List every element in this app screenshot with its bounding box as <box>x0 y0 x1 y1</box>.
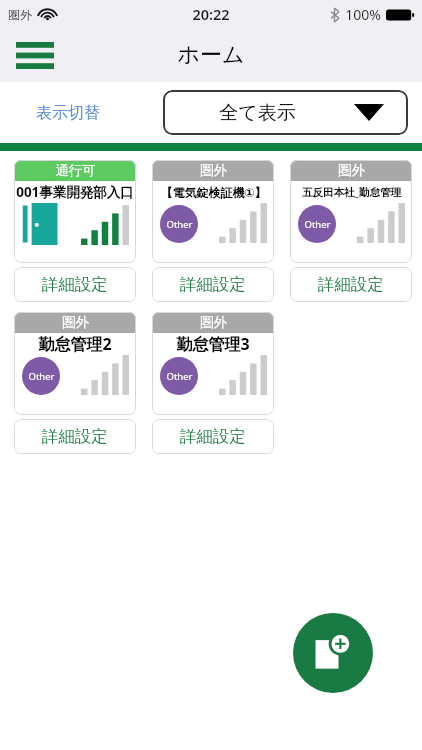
button[interactable]: 詳細設定 <box>14 267 136 302</box>
staticText: 勤怠管理2 <box>38 333 112 355</box>
staticText: 詳細設定 <box>180 274 246 295</box>
button[interactable]: 詳細設定 <box>152 267 274 302</box>
button[interactable]: 詳細設定 <box>14 419 136 454</box>
button[interactable]: 全て表示 <box>163 90 408 135</box>
staticText: 100% <box>345 5 381 24</box>
button[interactable]: 圏外 <box>290 160 412 263</box>
staticText: 詳細設定 <box>42 274 108 295</box>
staticText: 詳細設定 <box>318 274 384 295</box>
staticText: 圏外 <box>8 7 32 22</box>
staticText: 通行可 <box>55 162 96 179</box>
staticText: Other <box>166 370 193 383</box>
button[interactable]: 圏外 <box>14 312 136 415</box>
staticText: 詳細設定 <box>180 426 246 447</box>
staticText: 五反田本社_勤怠管理 <box>302 185 401 199</box>
staticText: 【電気錠検証機①】 <box>160 185 267 200</box>
button[interactable]: 通行可 <box>14 160 136 263</box>
button[interactable]: Add door <box>293 613 373 693</box>
button[interactable]: 詳細設定 <box>152 419 274 454</box>
staticText: 詳細設定 <box>42 426 108 447</box>
staticText: 勤怠管理3 <box>176 333 250 355</box>
button[interactable]: 圏外 <box>152 312 274 415</box>
staticText: 表示切替 <box>36 103 100 123</box>
staticText: Other <box>166 218 193 231</box>
button[interactable]: Menu <box>12 36 58 74</box>
staticText: 001事業開発部入口 <box>16 183 134 201</box>
staticText: Other <box>28 370 55 383</box>
staticText: 全て表示 <box>219 101 296 125</box>
staticText: 圏外 <box>200 162 227 179</box>
button[interactable]: 表示切替 <box>36 103 100 123</box>
staticText: ホーム <box>177 41 245 69</box>
button[interactable]: 圏外 <box>152 160 274 263</box>
staticText: 圏外 <box>62 314 89 331</box>
staticText: 20:22 <box>192 4 230 24</box>
staticText: Other <box>304 218 331 231</box>
staticText: 圏外 <box>338 162 365 179</box>
button[interactable]: 詳細設定 <box>290 267 412 302</box>
staticText: 圏外 <box>200 314 227 331</box>
